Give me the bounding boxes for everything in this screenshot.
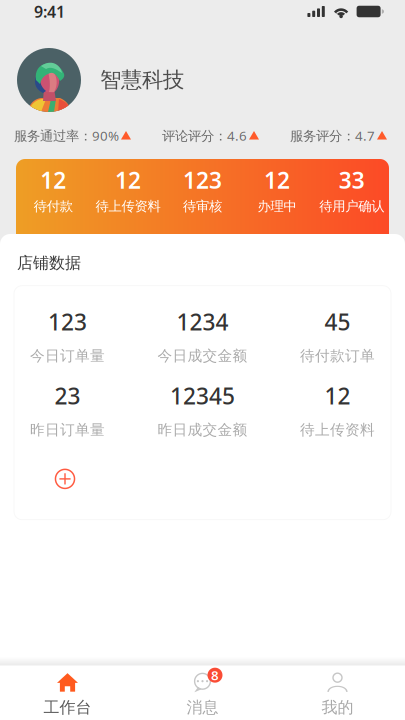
- staticText: 服务通过率：90%: [14, 127, 119, 144]
- staticText: 待审核: [183, 198, 222, 214]
- staticText: 23: [54, 381, 80, 411]
- staticText: 12: [115, 165, 141, 195]
- staticText: 昨日成交金额: [157, 421, 247, 439]
- staticText: 12345: [170, 381, 235, 411]
- staticText: 45: [324, 307, 350, 337]
- staticText: 我的: [321, 698, 353, 717]
- staticText: 12: [264, 165, 290, 195]
- button[interactable]: 我的: [270, 672, 405, 717]
- button[interactable]: 工作台: [0, 672, 135, 717]
- staticText: 今日成交金额: [157, 347, 247, 365]
- staticText: 待付款订单: [300, 347, 375, 365]
- staticText: 办理中: [258, 198, 297, 214]
- staticText: 12: [324, 381, 350, 411]
- staticText: 1234: [176, 307, 228, 337]
- staticText: 工作台: [43, 698, 91, 717]
- staticText: 店铺数据: [17, 253, 81, 273]
- staticText: 8: [211, 666, 219, 684]
- staticText: 评论评分：4.6: [162, 127, 247, 144]
- staticText: 12: [40, 165, 66, 195]
- staticText: 123: [48, 307, 87, 337]
- staticText: 33: [339, 165, 365, 195]
- staticText: 待付款: [34, 198, 73, 214]
- staticText: 今日订单量: [30, 347, 105, 365]
- staticText: 待上传资料: [95, 198, 160, 214]
- staticText: 消息: [186, 698, 218, 717]
- button[interactable]: 添加: [46, 460, 84, 498]
- staticText: 123: [183, 165, 222, 195]
- staticText: 待上传资料: [300, 421, 375, 439]
- button[interactable]: 8: [135, 672, 270, 717]
- staticText: 待用户确认: [319, 198, 384, 214]
- staticText: 9:41: [34, 1, 65, 22]
- staticText: 昨日订单量: [30, 421, 105, 439]
- staticText: 服务评分：4.7: [290, 127, 375, 144]
- staticText: 智慧科技: [100, 67, 184, 93]
